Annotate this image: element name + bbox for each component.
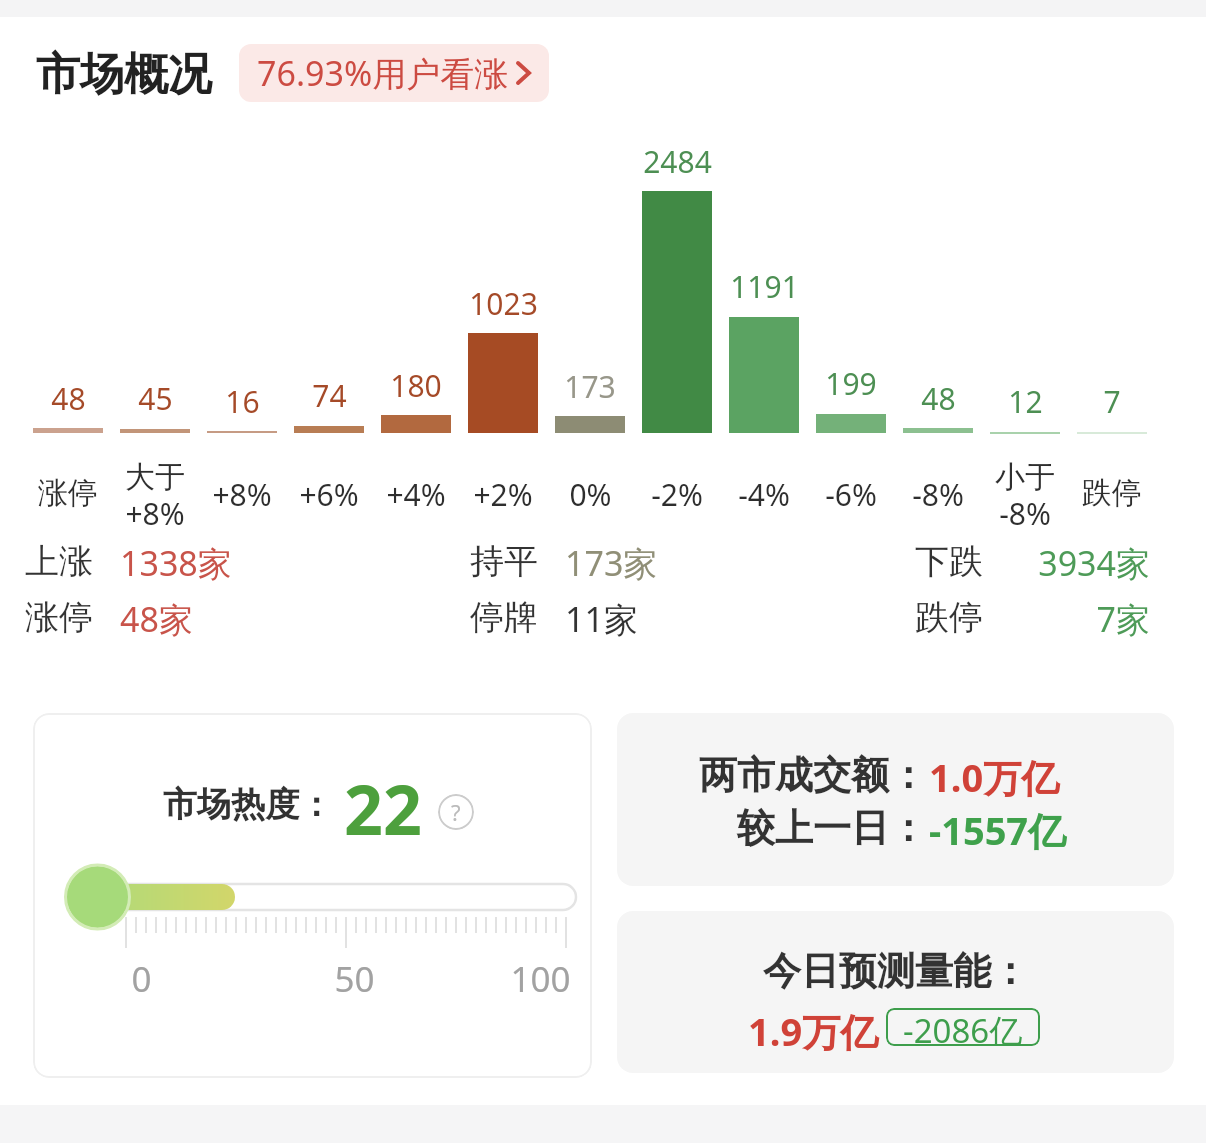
staticText: 市场热度： (163, 783, 333, 826)
staticText: 0 (131, 955, 152, 1003)
staticText: 2484 (643, 141, 712, 182)
staticText: 74 (312, 375, 347, 416)
staticText: 50 (334, 955, 375, 1003)
staticText: 45 (138, 378, 173, 419)
staticText: +8% (212, 474, 272, 515)
staticText: 0% (569, 474, 612, 515)
staticText: 100 (510, 955, 571, 1003)
staticText: 停牌 (470, 596, 538, 639)
staticText: 76.93%用户看涨 (257, 50, 509, 96)
staticText: 7 (1103, 381, 1121, 422)
staticText: 22 (344, 762, 422, 855)
staticText: 1.9万亿 (748, 1005, 879, 1057)
staticText: -2% (651, 474, 703, 515)
staticText: 11家 (565, 596, 638, 642)
staticText: 3934家 (1038, 540, 1150, 586)
staticText: 1338家 (120, 540, 232, 586)
button[interactable] (617, 713, 1174, 886)
staticText: 199 (825, 363, 877, 404)
staticText: 12 (1008, 381, 1043, 422)
staticText: -8% (912, 474, 964, 515)
staticText: +2% (473, 474, 533, 515)
staticText: +6% (299, 474, 359, 515)
staticText: 1191 (730, 266, 799, 307)
staticText: 小于 -8% (995, 458, 1055, 534)
button[interactable] (617, 911, 1174, 1073)
staticText: +4% (386, 474, 446, 515)
button[interactable]: 76.93%用户看涨 (239, 44, 549, 102)
staticText: 涨停 (25, 596, 93, 639)
staticText: 48 (51, 378, 86, 419)
staticText: -4% (738, 474, 790, 515)
staticText: 市场概况 (36, 47, 212, 102)
staticText: 跌停 (1082, 474, 1142, 512)
staticText: 上涨 (25, 540, 93, 583)
staticText: 较上一日： (737, 804, 927, 852)
staticText: 今日预测量能： (763, 947, 1029, 995)
staticText: 1.0万亿 (929, 751, 1060, 803)
staticText: 7家 (1096, 596, 1150, 642)
staticText: -2086亿 (903, 1008, 1023, 1046)
staticText: 持平 (470, 540, 538, 583)
staticText: 16 (225, 381, 260, 422)
staticText: 大于 +8% (125, 458, 185, 534)
staticText: ? (451, 797, 461, 827)
staticText: 173家 (565, 540, 658, 586)
staticText: 涨停 (38, 474, 98, 512)
staticText: -1557亿 (929, 804, 1067, 856)
staticText: 180 (390, 365, 442, 406)
staticText: 173 (564, 366, 616, 407)
staticText: 48 (921, 378, 956, 419)
staticText: 跌停 (915, 596, 983, 639)
staticText: 下跌 (915, 540, 983, 583)
staticText: -6% (825, 474, 877, 515)
staticText: 两市成交额： (699, 751, 927, 799)
staticText: 1023 (469, 283, 538, 324)
staticText: 48家 (120, 596, 193, 642)
button[interactable] (33, 713, 592, 1078)
